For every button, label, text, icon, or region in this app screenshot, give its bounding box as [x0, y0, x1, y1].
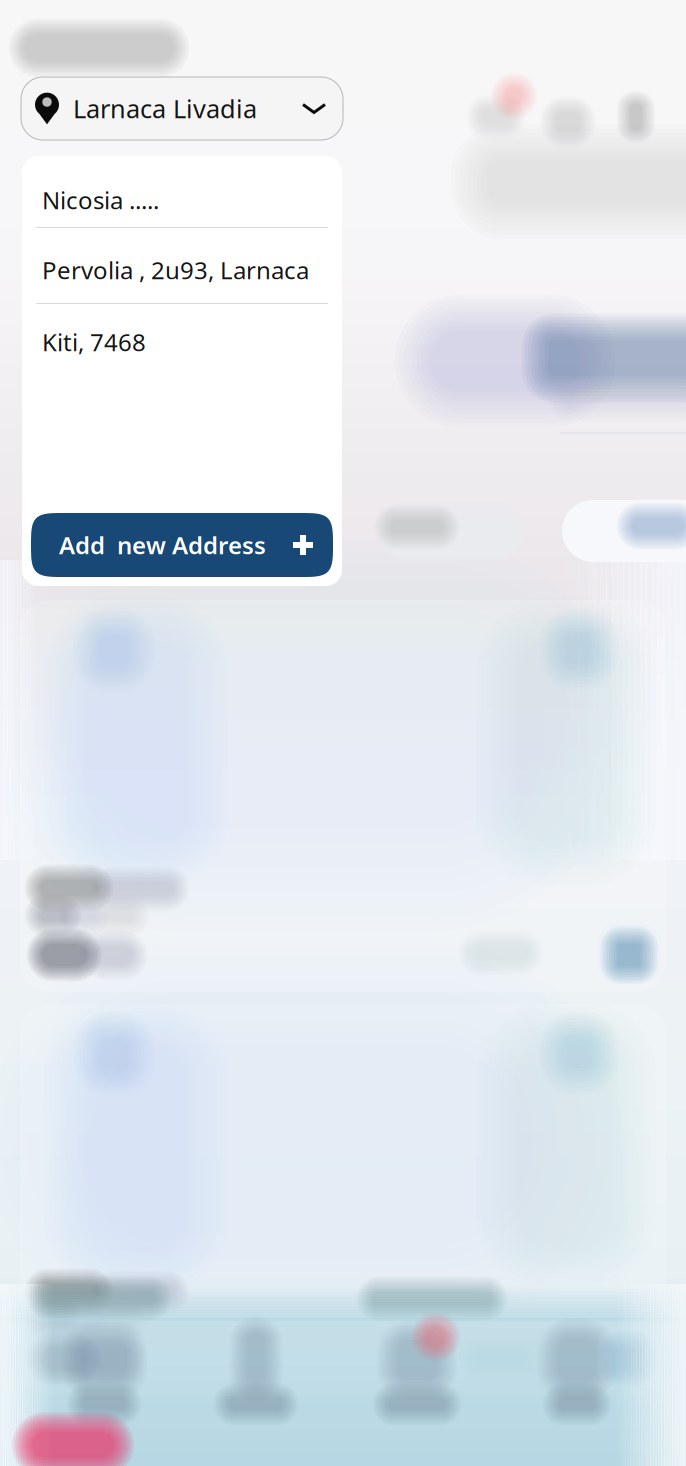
staticText: Nicosia .....	[42, 184, 159, 216]
staticText: Larnaca Livadia	[73, 92, 257, 125]
button[interactable]: Kiti, 7468	[22, 314, 342, 370]
staticText: Kiti, 7468	[42, 326, 146, 358]
button[interactable]: Nicosia .....	[22, 172, 342, 228]
button[interactable]: Larnaca Livadia	[21, 77, 343, 140]
button[interactable]: Pervolia , 2u93, Larnaca	[22, 242, 342, 298]
staticText: Pervolia , 2u93, Larnaca	[42, 254, 309, 286]
button[interactable]: Add new Address	[31, 513, 333, 577]
staticText: Add new Address	[59, 529, 266, 561]
